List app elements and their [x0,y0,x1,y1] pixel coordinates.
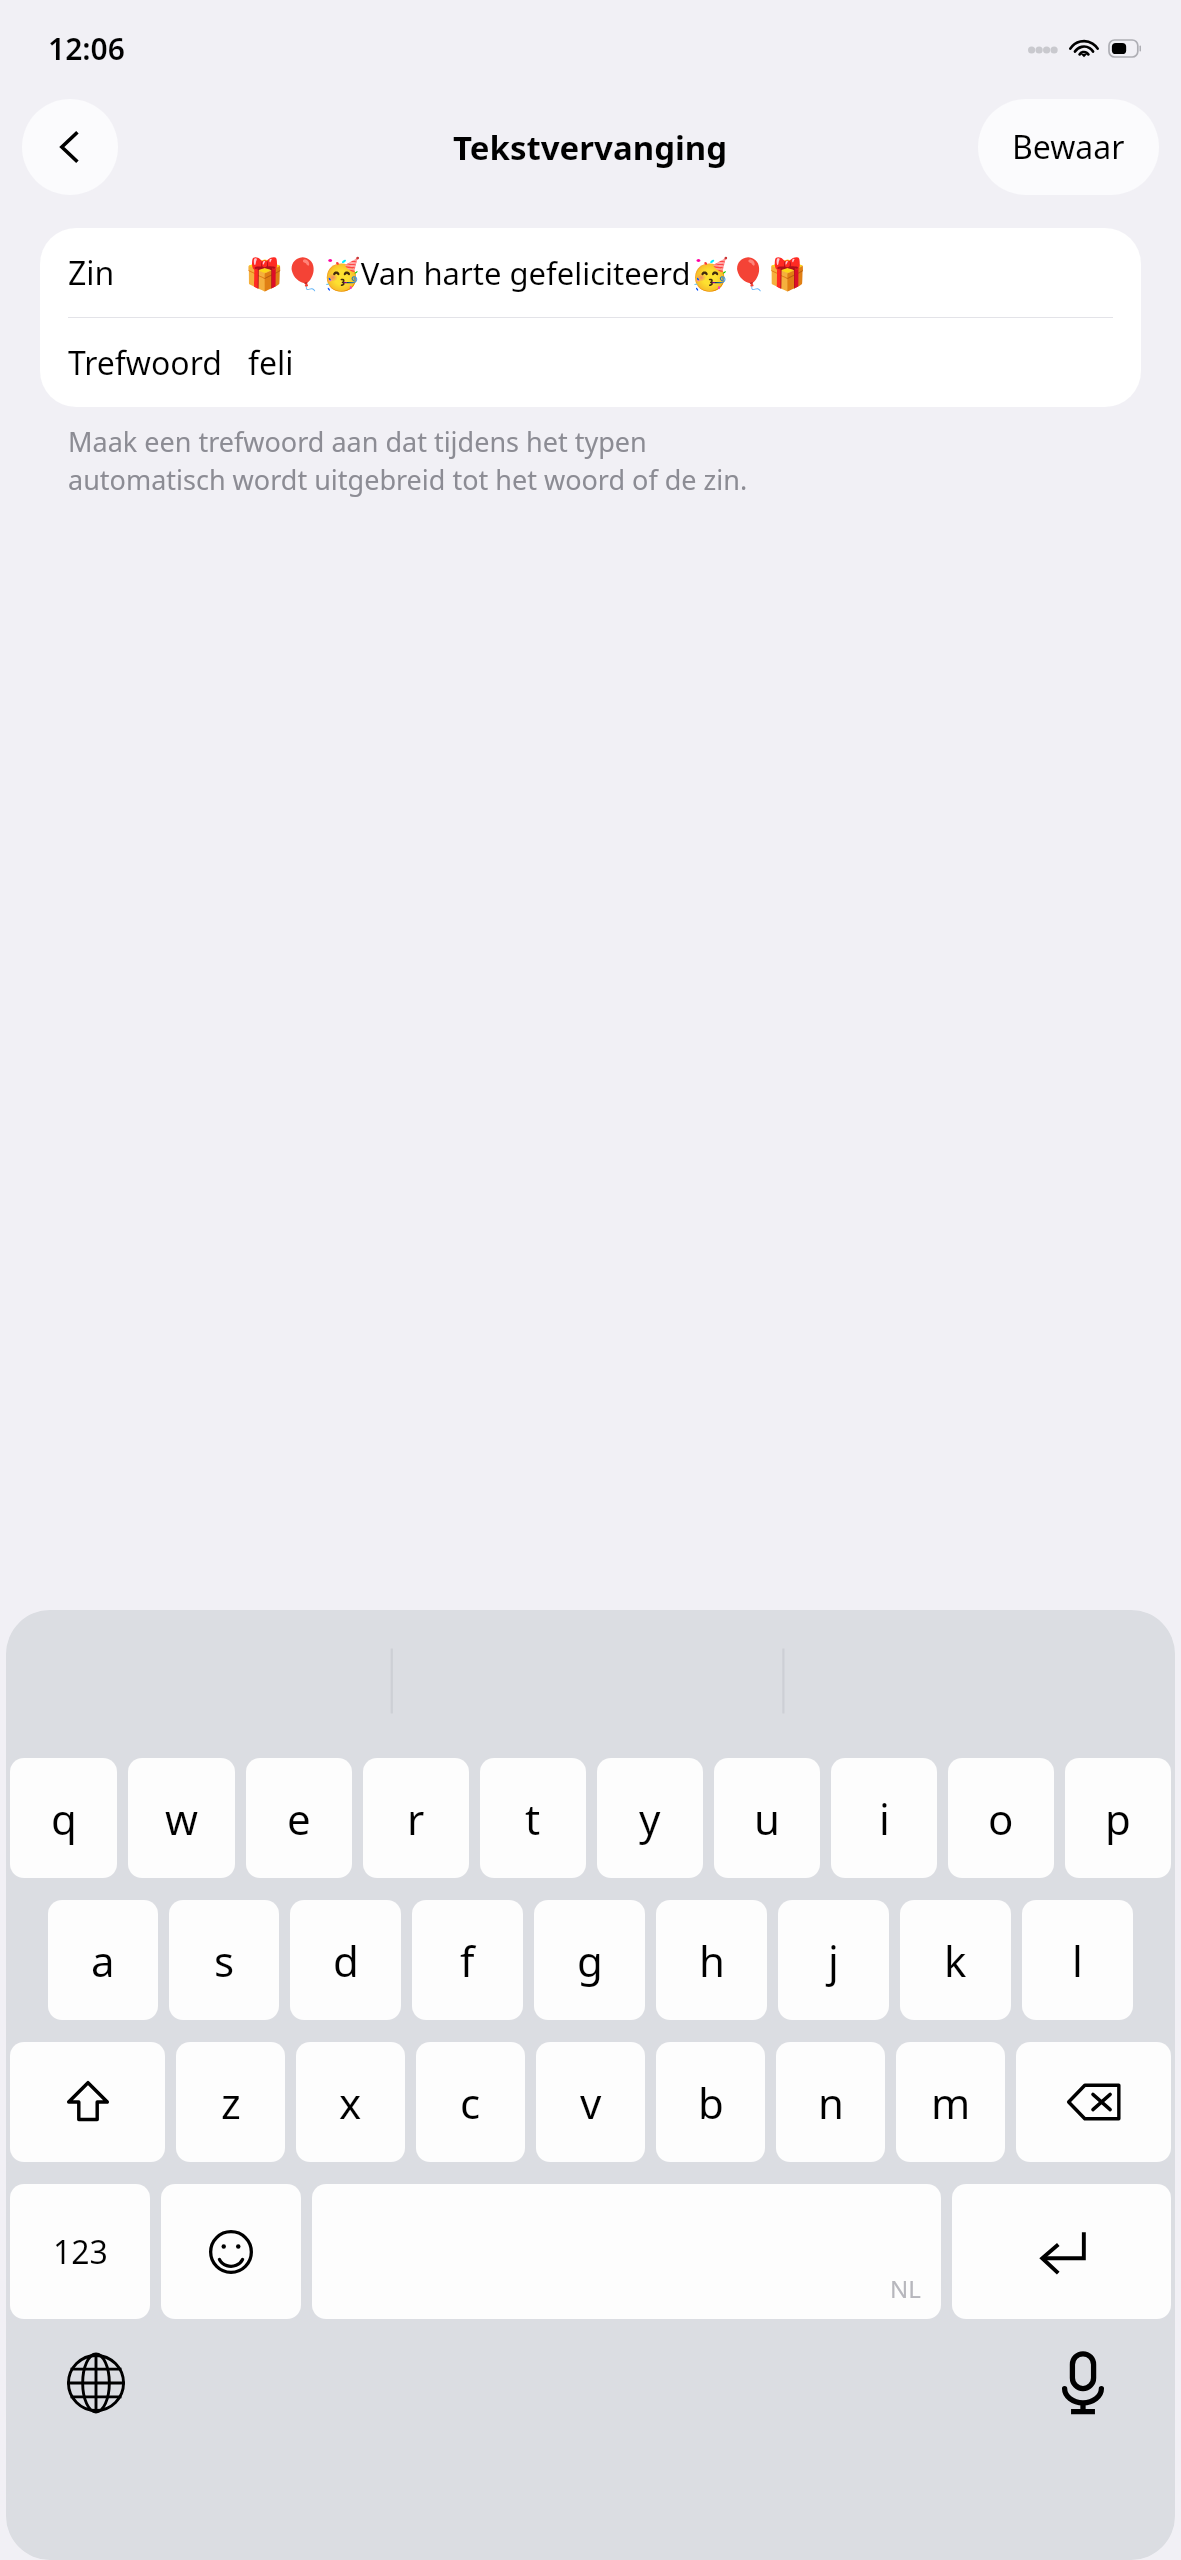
button[interactable]: Toetsenbord wisselen [56,2343,136,2423]
button[interactable]: Terug [22,99,118,195]
button[interactable]: n [776,2042,885,2162]
staticText: o [988,1790,1014,1847]
staticText: n [818,2074,844,2131]
button[interactable]: l [1022,1900,1133,2020]
button[interactable]: Dicteren [1043,2343,1123,2423]
button[interactable]: y [597,1758,703,1878]
button[interactable]: h [656,1900,767,2020]
staticText: w [165,1790,199,1847]
staticText: 123 [53,2230,108,2274]
staticText: j [828,1932,839,1989]
button[interactable]: z [176,2042,285,2162]
staticText: z [221,2074,241,2131]
button[interactable]: f [412,1900,523,2020]
staticText: Zin [68,251,115,295]
staticText: d [333,1932,359,1989]
button[interactable]: r [363,1758,469,1878]
button[interactable]: Backspace [1016,2042,1171,2162]
button[interactable]: Zin [40,228,1141,317]
staticText: x [339,2074,362,2131]
button[interactable]: Trefwoord [40,318,1141,407]
staticText: g [577,1932,603,1989]
staticText: f [460,1932,475,1989]
staticText: h [699,1932,725,1989]
staticText: e [287,1790,311,1847]
button[interactable]: Shift [10,2042,165,2162]
button[interactable]: Emoji [161,2184,301,2319]
staticText: y [639,1790,661,1847]
staticText: Maak een trefwoord aan dat tijdens het t… [68,423,748,498]
button[interactable]: k [900,1900,1011,2020]
button[interactable]: Bewaar [978,99,1159,195]
button[interactable]: p [1065,1758,1171,1878]
staticText: c [460,2074,481,2131]
button[interactable]: x [296,2042,405,2162]
button[interactable]: v [536,2042,645,2162]
button[interactable]: b [656,2042,765,2162]
staticText: r [407,1790,425,1847]
staticText: v [580,2074,602,2131]
button[interactable]: 123 [10,2184,150,2319]
staticText: Bewaar [1012,125,1125,169]
button[interactable]: a [48,1900,158,2020]
button[interactable]: q [10,1758,117,1878]
button[interactable]: o [948,1758,1054,1878]
staticText: i [879,1790,890,1847]
staticText: t [525,1790,541,1847]
button[interactable]: u [714,1758,820,1878]
staticText: 12:06 [48,28,125,69]
staticText: b [698,2074,724,2131]
staticText: 🎁🎈🥳Van harte gefeliciteerd🥳🎈🎁 [245,252,807,294]
staticText: Tekstvervanging [453,125,728,170]
button[interactable]: g [534,1900,645,2020]
button[interactable]: c [416,2042,525,2162]
staticText: u [754,1790,780,1847]
staticText: feli [248,341,294,385]
staticText: NL [890,2272,921,2305]
button[interactable]: s [169,1900,279,2020]
button[interactable]: e [246,1758,352,1878]
staticText: s [214,1932,235,1989]
staticText: l [1072,1932,1083,1989]
staticText: Trefwoord [68,341,222,385]
staticText: p [1105,1790,1131,1847]
button[interactable]: j [778,1900,889,2020]
staticText: a [91,1932,115,1989]
button[interactable]: w [128,1758,235,1878]
staticText: q [51,1790,77,1847]
button[interactable]: Spatie [312,2184,941,2319]
staticText: m [931,2074,971,2131]
button[interactable]: m [896,2042,1005,2162]
button[interactable]: d [290,1900,401,2020]
button[interactable]: t [480,1758,586,1878]
button[interactable]: Enter [952,2184,1171,2319]
staticText: k [944,1932,967,1989]
button[interactable]: i [831,1758,937,1878]
